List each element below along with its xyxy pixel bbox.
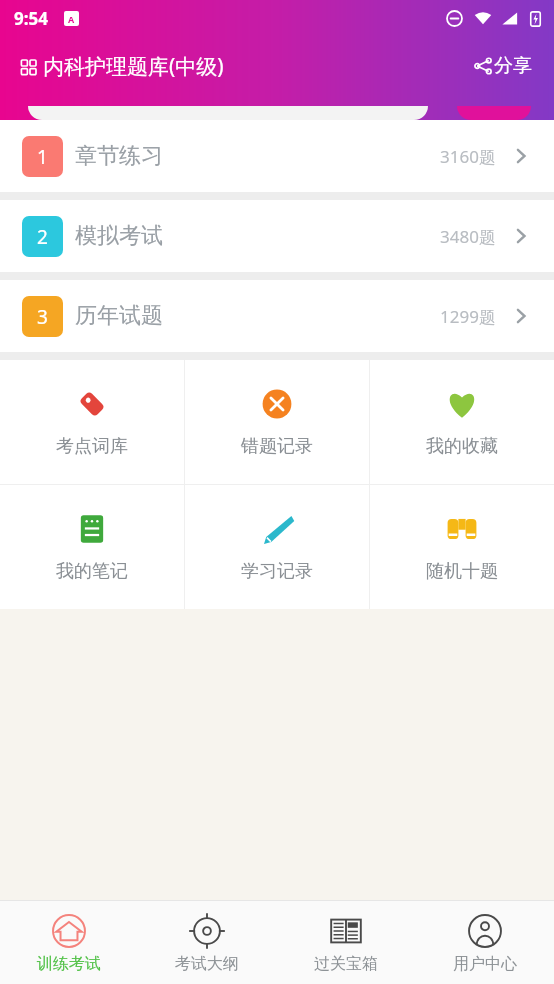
button[interactable]: 2: [0, 200, 554, 272]
button[interactable]: Action: [457, 106, 531, 120]
staticText: 我的笔记: [56, 560, 128, 583]
staticText: 分享: [494, 54, 532, 78]
button[interactable]: 错题记录: [185, 360, 369, 484]
staticText: 1299题: [440, 305, 496, 328]
button[interactable]: 用户中心: [415, 901, 554, 984]
button[interactable]: 学习记录: [185, 485, 369, 609]
button[interactable]: 我的收藏: [370, 360, 554, 484]
staticText: 用户中心: [453, 954, 517, 974]
staticText: 训练考试: [37, 954, 101, 974]
button[interactable]: 过关宝箱: [276, 901, 415, 984]
button[interactable]: 我的笔记: [0, 485, 184, 609]
staticText: 随机十题: [426, 560, 498, 583]
staticText: 章节练习: [75, 142, 163, 170]
button[interactable]: 考点词库: [0, 360, 184, 484]
staticText: 3480题: [440, 225, 496, 248]
staticText: 模拟考试: [75, 222, 163, 250]
staticText: 历年试题: [75, 302, 163, 330]
staticText: 3160题: [440, 145, 496, 168]
staticText: 9:54: [14, 7, 48, 30]
button[interactable]: 训练考试: [0, 901, 138, 984]
button[interactable]: 1: [0, 120, 554, 192]
staticText: A: [68, 13, 75, 25]
staticText: 考点词库: [56, 435, 128, 458]
staticText: 过关宝箱: [314, 954, 378, 974]
staticText: 1: [37, 144, 48, 170]
staticText: 内科护理题库(中级): [43, 52, 224, 81]
button[interactable]: 3: [0, 280, 554, 352]
staticText: 学习记录: [241, 560, 313, 583]
button[interactable]: 考试大纲: [138, 901, 276, 984]
staticText: 3: [37, 304, 48, 330]
staticText: 2: [37, 224, 48, 250]
button[interactable]: 随机十题: [370, 485, 554, 609]
staticText: 我的收藏: [426, 435, 498, 458]
button[interactable]: Share: [468, 48, 538, 84]
staticText: 考试大纲: [175, 954, 239, 974]
staticText: 错题记录: [241, 435, 313, 458]
